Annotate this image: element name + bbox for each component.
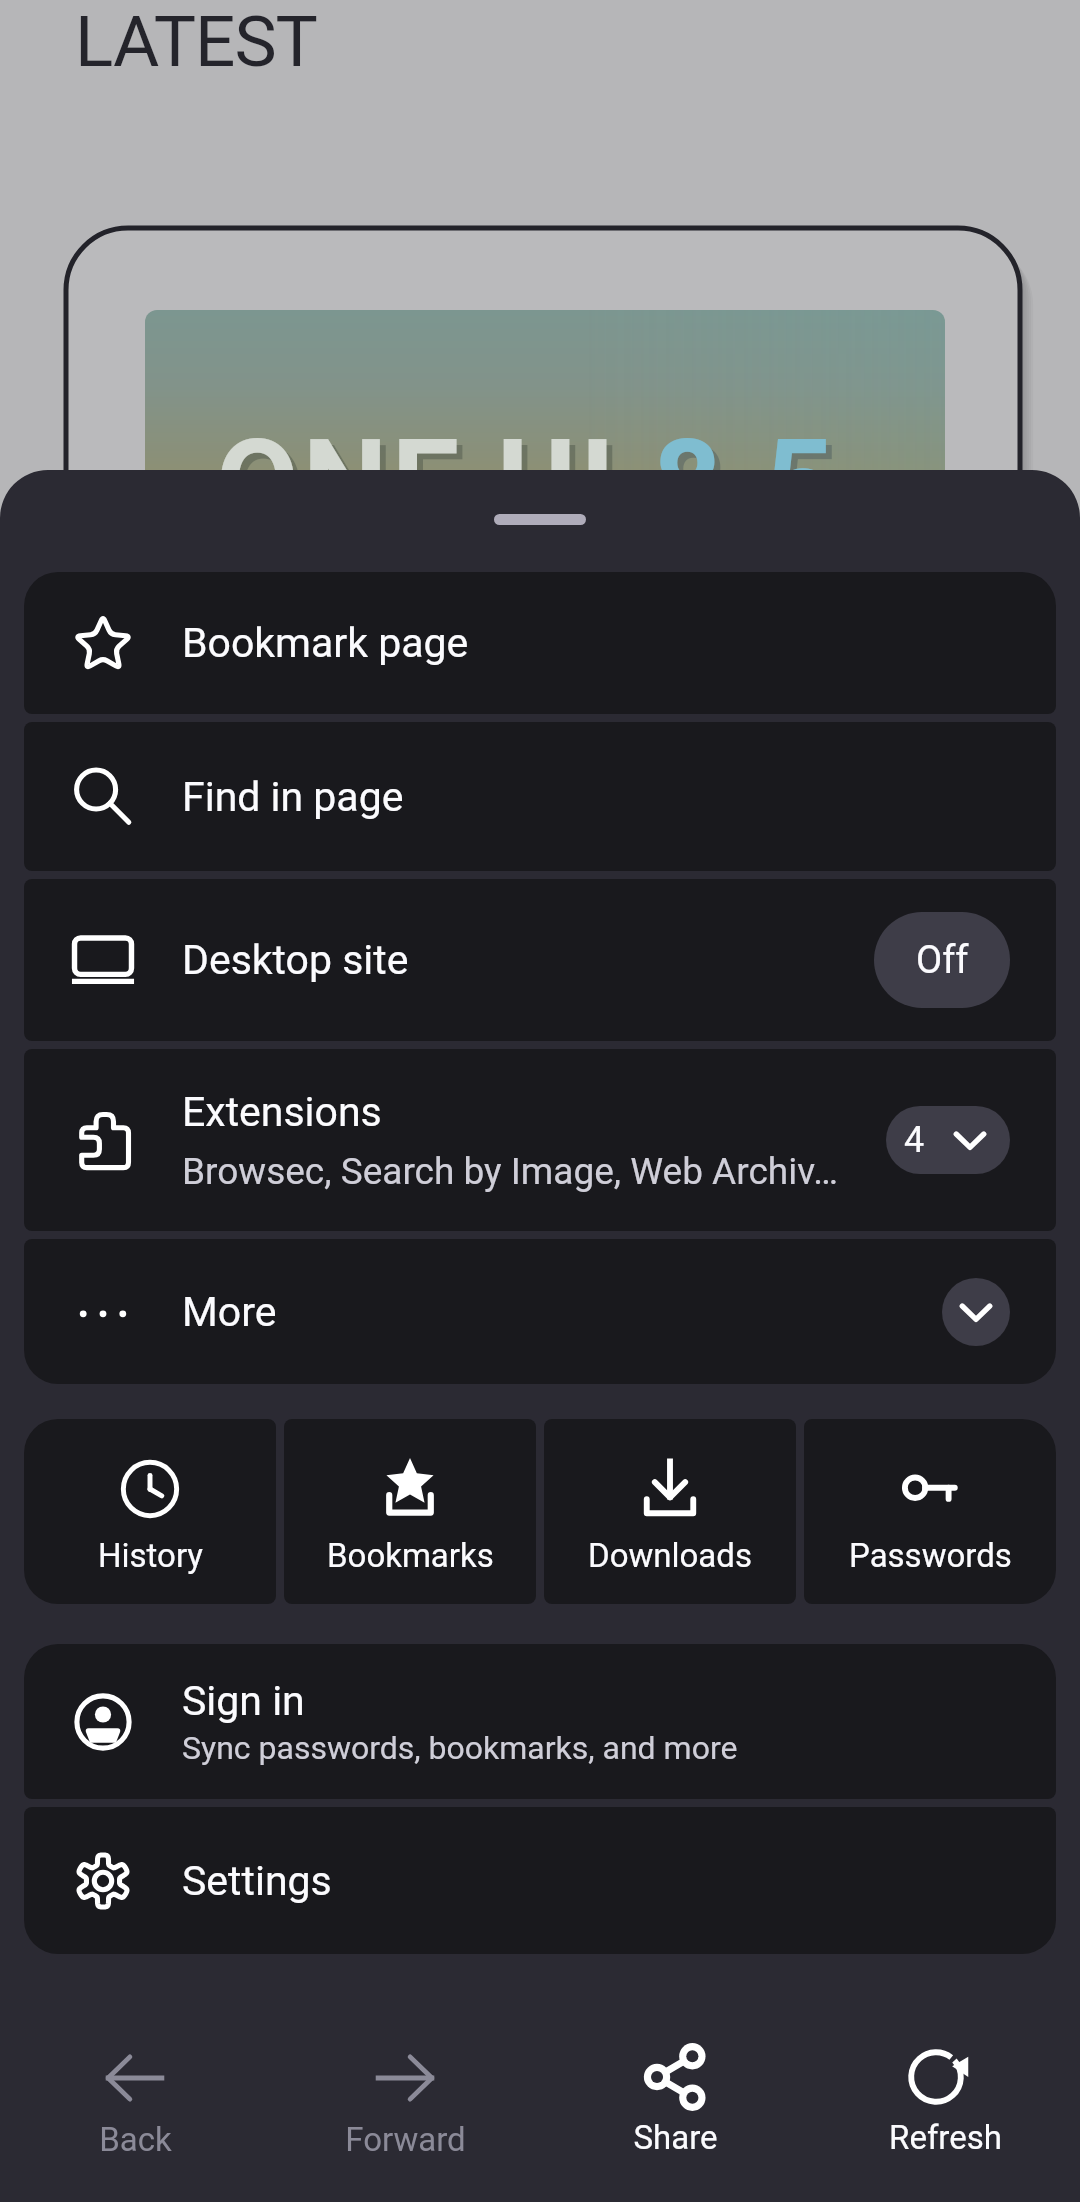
button[interactable]: Bookmarks [284,1419,536,1604]
staticText: 4 [904,1119,925,1161]
staticText: Sign in [182,1677,305,1725]
staticText: ONE UI [222,420,659,561]
staticText: Sync passwords, bookmarks, and more [182,1729,738,1767]
button[interactable]: Sign in [24,1644,1056,1799]
staticText: Desktop site [182,936,874,984]
staticText: History [98,1536,203,1575]
button[interactable]: Expand extensions [886,1106,1010,1174]
staticText: More [182,1288,942,1336]
button[interactable]: History [24,1419,276,1604]
staticText: Bookmark page [182,619,469,667]
staticText: Refresh [889,2118,1002,2157]
staticText: Forward [345,2120,466,2159]
button[interactable]: Downloads [544,1419,796,1604]
staticText: Passwords [849,1536,1012,1575]
staticText: 8.5 [653,414,838,555]
staticText: ONE UI [216,414,653,555]
staticText: Bookmarks [327,1536,494,1575]
button[interactable]: Back [0,1990,270,2202]
button[interactable]: Refresh [810,1990,1080,2202]
staticText: Off [916,938,969,983]
button[interactable]: Expand more options [942,1278,1010,1346]
staticText: Extensions [182,1088,382,1136]
button[interactable]: Find in page [24,722,1056,871]
button[interactable]: Forward [270,1990,540,2202]
button[interactable]: Extensions [24,1049,1056,1231]
staticText: Downloads [588,1536,752,1575]
button[interactable]: More [24,1239,1056,1384]
button[interactable]: Off [874,912,1010,1008]
staticText: 8.5 [659,420,844,561]
staticText: LATEST [75,0,317,83]
staticText: Browsec, Search by Image, Web Archiv… [182,1150,838,1193]
button[interactable]: Share [540,1990,810,2202]
button[interactable]: Desktop site [24,879,1056,1041]
staticText: Settings [182,1857,332,1905]
staticText: Share [633,2118,718,2157]
button[interactable]: Passwords [804,1419,1056,1604]
button[interactable]: Settings [24,1807,1056,1954]
staticText: Back [99,2120,172,2159]
staticText: Find in page [182,773,404,821]
button[interactable]: Bookmark page [24,572,1056,714]
